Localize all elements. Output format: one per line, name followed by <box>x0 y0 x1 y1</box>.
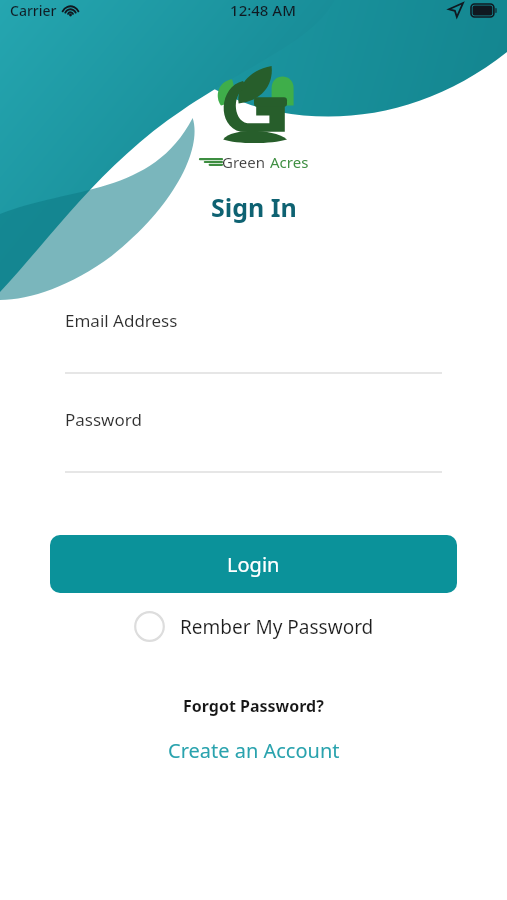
staticText: Email Address <box>65 309 178 332</box>
staticText: Carrier <box>10 1 57 20</box>
button[interactable]: Rember My Password <box>124 605 384 648</box>
staticText: 12:48 AM <box>230 0 296 20</box>
button[interactable]: Forgot Password? <box>169 690 338 722</box>
staticText: Rember My Password <box>180 614 374 640</box>
button[interactable]: Login <box>50 535 457 593</box>
staticText: Acres <box>270 152 309 172</box>
staticText: Green <box>222 152 266 172</box>
staticText: Create an Account <box>168 737 340 764</box>
staticText: Forgot Password? <box>183 695 324 717</box>
staticText: Password <box>65 408 142 431</box>
staticText: Login <box>227 551 280 578</box>
staticText: Sign In <box>211 190 297 224</box>
button[interactable]: Create an Account <box>154 732 354 769</box>
